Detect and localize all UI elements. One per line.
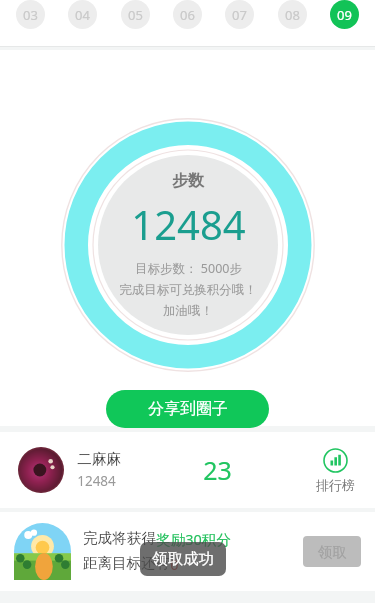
staticText: 排行榜 — [316, 477, 355, 493]
staticText: 完成目标可兑换积分哦！ — [119, 282, 257, 298]
staticText: 09 — [337, 6, 352, 24]
staticText: 08 — [285, 6, 300, 24]
button[interactable]: 08 — [278, 0, 307, 29]
button[interactable]: 05 — [121, 0, 150, 29]
staticText: 领取 — [318, 543, 347, 561]
staticText: 12484 — [131, 197, 246, 251]
button[interactable]: 09 — [330, 0, 359, 29]
staticText: 03 — [23, 6, 38, 24]
staticText: 07 — [232, 6, 247, 24]
button[interactable]: 06 — [173, 0, 202, 29]
staticText: 完成将获得 — [83, 529, 156, 547]
staticText: 奖励30积分 — [156, 529, 231, 549]
button[interactable]: 排行榜 — [310, 446, 361, 495]
staticText: 12484 — [77, 472, 116, 490]
button[interactable]: 领取 — [303, 536, 361, 567]
button[interactable]: 07 — [225, 0, 254, 29]
staticText: 0 — [170, 554, 179, 574]
staticText: 二麻麻 — [77, 450, 121, 468]
staticText: 领取成功 — [152, 549, 214, 569]
staticText: 目标步数： 5000步 — [135, 260, 242, 277]
staticText: 距离目标还有 — [83, 554, 170, 572]
staticText: 04 — [75, 6, 90, 24]
staticText: 05 — [128, 6, 143, 24]
button[interactable]: 04 — [68, 0, 97, 29]
staticText: 加油哦！ — [163, 303, 213, 319]
staticText: 步数 — [172, 171, 204, 191]
staticText: 06 — [180, 6, 195, 24]
staticText: 分享到圈子 — [148, 399, 228, 419]
button[interactable]: 分享到圈子 — [106, 390, 269, 428]
button[interactable]: 03 — [16, 0, 45, 29]
staticText: 23 — [203, 453, 232, 487]
